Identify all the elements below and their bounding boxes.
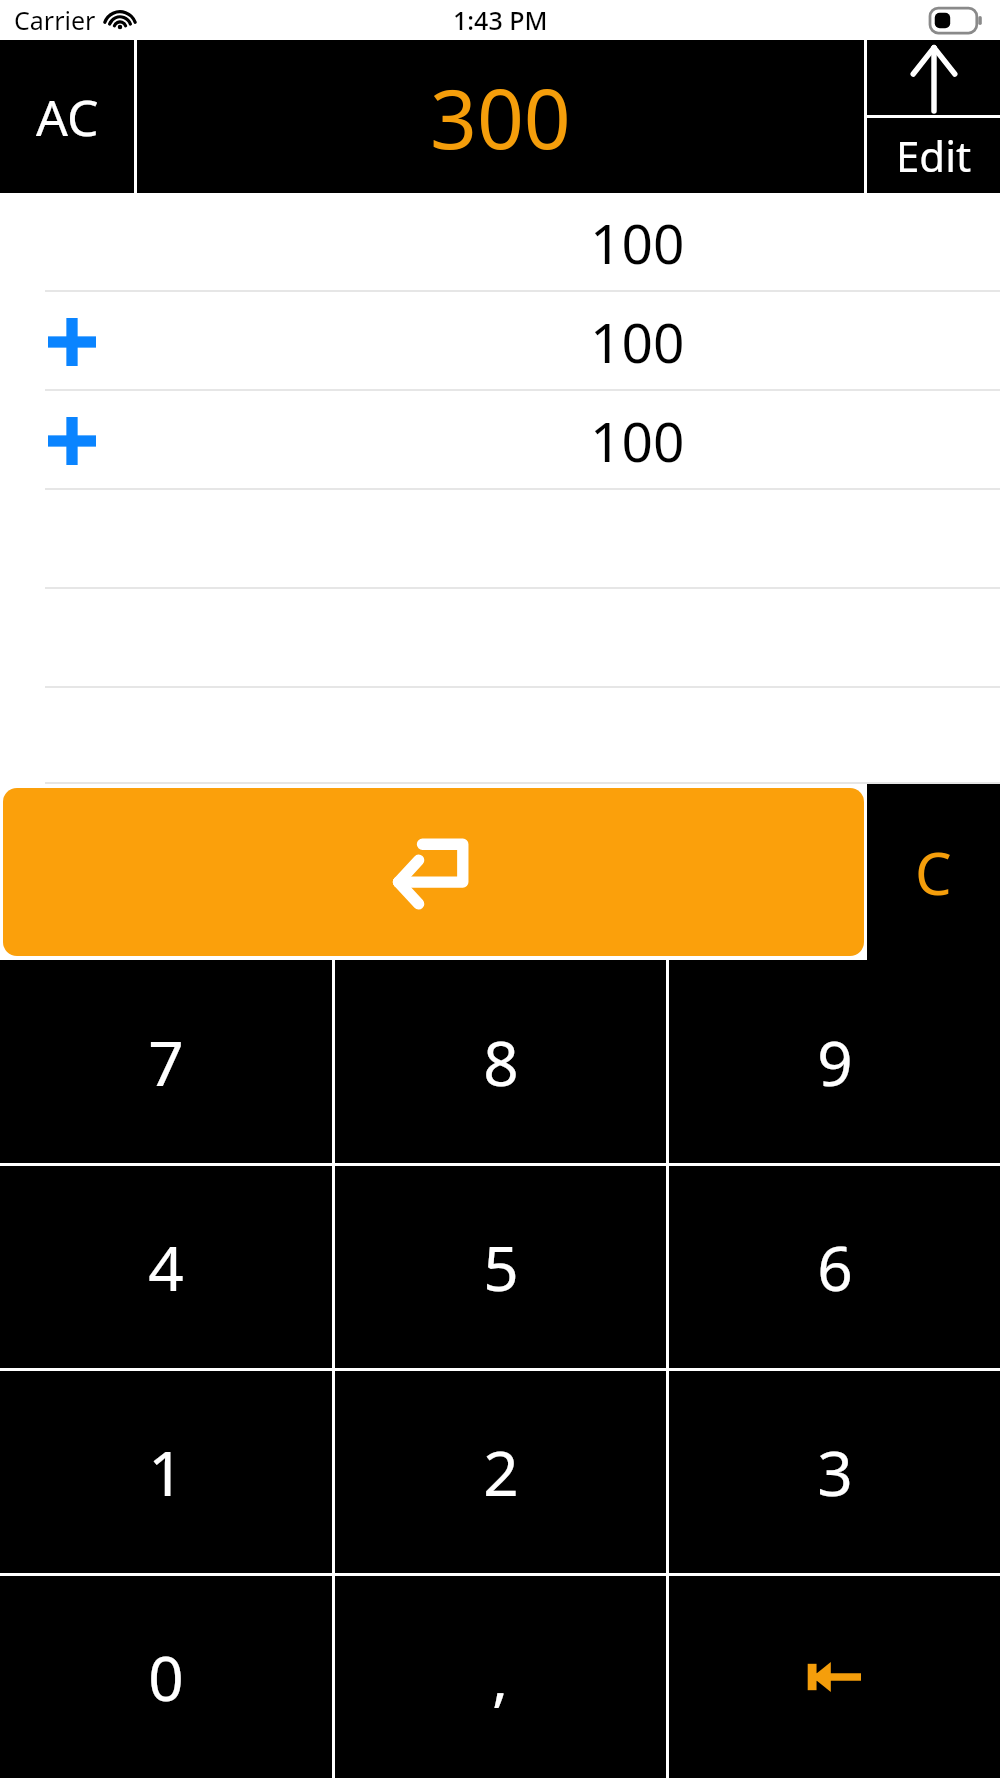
staticText: Carrier: [14, 3, 96, 37]
button[interactable]: 9: [669, 960, 1000, 1163]
button[interactable]: Backspace: [669, 1576, 1000, 1778]
staticText: 2: [483, 1430, 519, 1514]
staticText: 6: [817, 1225, 853, 1309]
button[interactable]: 2: [335, 1371, 666, 1573]
button[interactable]: 6: [669, 1166, 1000, 1368]
staticText: 5: [483, 1225, 519, 1309]
staticText: 1: [148, 1430, 184, 1514]
button[interactable]: Enter: [3, 788, 864, 956]
staticText: 4: [148, 1225, 184, 1309]
staticText: 300: [430, 61, 571, 173]
button[interactable]: AC: [0, 40, 134, 193]
staticText: Edit: [896, 127, 972, 184]
button[interactable]: [0, 688, 1000, 784]
staticText: 9: [817, 1020, 853, 1104]
button[interactable]: [0, 589, 1000, 688]
button[interactable]: 8: [335, 960, 666, 1163]
staticText: 8: [483, 1020, 519, 1104]
staticText: 100: [590, 205, 685, 280]
button[interactable]: 100: [0, 391, 1000, 490]
button[interactable]: ,: [335, 1576, 666, 1778]
staticText: AC: [36, 83, 99, 151]
button[interactable]: 3: [669, 1371, 1000, 1573]
staticText: 0: [148, 1635, 184, 1719]
staticText: ,: [492, 1636, 509, 1718]
staticText: 1:43 PM: [453, 3, 548, 37]
button[interactable]: 5: [335, 1166, 666, 1368]
staticText: C: [915, 833, 952, 912]
button[interactable]: 0: [0, 1576, 332, 1778]
button[interactable]: 100: [0, 193, 1000, 292]
button[interactable]: 300: [137, 40, 864, 193]
staticText: 7: [148, 1020, 184, 1104]
button[interactable]: [0, 490, 1000, 589]
staticText: 3: [817, 1430, 853, 1514]
staticText: 100: [590, 403, 685, 478]
button[interactable]: 4: [0, 1166, 332, 1368]
button[interactable]: C: [867, 784, 1000, 960]
button[interactable]: 1: [0, 1371, 332, 1573]
button[interactable]: Edit: [867, 118, 1000, 193]
button[interactable]: 7: [0, 960, 332, 1163]
button[interactable]: Scroll up: [867, 40, 1000, 115]
button[interactable]: 100: [0, 292, 1000, 391]
staticText: 100: [590, 304, 685, 379]
